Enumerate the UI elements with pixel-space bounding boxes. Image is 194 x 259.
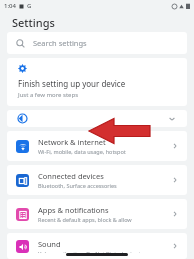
staticText: Just a few more steps: [18, 91, 79, 99]
staticText: Apps & notifications: [38, 205, 109, 215]
staticText: 1:04: [4, 2, 16, 10]
other: Open Sound: [171, 242, 179, 250]
button[interactable]: Expand: [7, 110, 187, 127]
staticText: Bluetooth, Surface accessories: [38, 182, 117, 189]
other: Open Network & internet: [171, 142, 179, 150]
other: Open Connected devices: [171, 176, 179, 184]
other: Open Apps & notifications: [171, 210, 179, 218]
staticText: Volume, vibration, Do Not Disturb, ringt…: [38, 250, 151, 253]
staticText: Sound: [38, 239, 61, 249]
button[interactable]: Search settings: [7, 32, 187, 54]
other: Expand: [168, 115, 176, 123]
staticText: Search settings: [33, 38, 87, 48]
staticText: Settings: [12, 15, 55, 30]
button[interactable]: Apps & notifications: [7, 199, 187, 229]
button[interactable]: Connected devices: [7, 165, 187, 195]
staticText: G: [27, 2, 32, 10]
button[interactable]: Sound: [7, 233, 187, 259]
staticText: Recent & default apps, block & allow: [38, 216, 132, 223]
button[interactable]: Network & internet: [7, 131, 187, 161]
staticText: Finish setting up your device: [18, 78, 126, 89]
staticText: Network & internet: [38, 137, 106, 147]
staticText: Wi-Fi, mobile, data usage, hotspot: [38, 148, 126, 155]
staticText: Connected devices: [38, 171, 104, 181]
button[interactable]: Finish setting up your device: [7, 58, 187, 106]
